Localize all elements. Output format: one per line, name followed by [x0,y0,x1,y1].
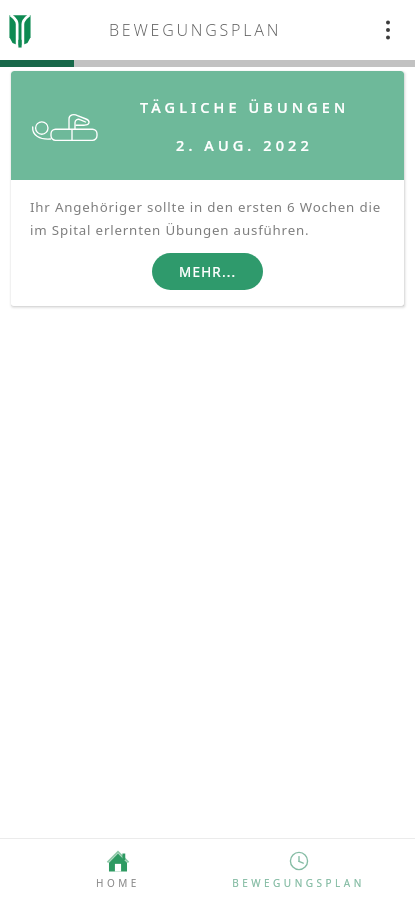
staticText: BEWEGUNGSPLAN [232,876,365,890]
button[interactable]: BEWEGUNGSPLAN [208,839,388,900]
button[interactable]: HOME [28,839,208,900]
button[interactable]: More options [368,10,408,50]
staticText: BEWEGUNGSPLAN [109,19,282,41]
button[interactable]: Logo [0,10,40,50]
staticText: Ihr Angehöriger sollte in den ersten 6 W… [30,198,381,239]
staticText: 2. AUG. 2022 [176,135,313,155]
button[interactable]: MEHR... [152,253,263,290]
button[interactable]: TÄGLICHE ÜBUNGEN [11,71,404,306]
staticText: MEHR... [179,263,237,281]
staticText: TÄGLICHE ÜBUNGEN [140,97,350,117]
staticText: HOME [96,876,140,890]
